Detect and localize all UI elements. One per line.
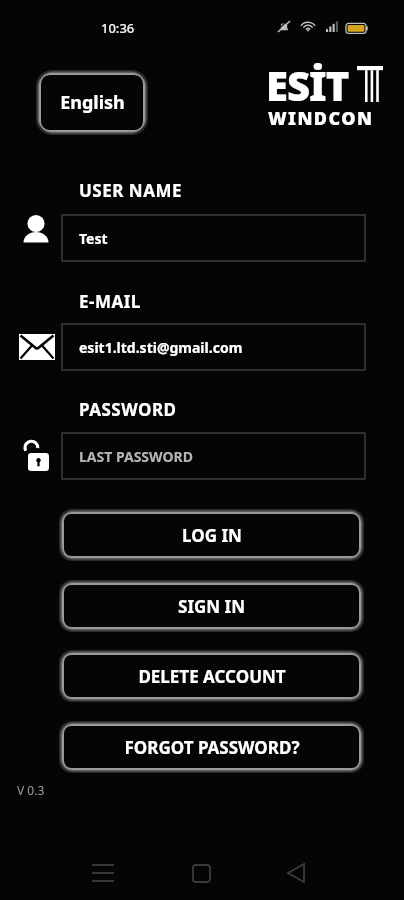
button[interactable]: Test bbox=[62, 215, 365, 261]
other: Email bbox=[19, 334, 55, 360]
button[interactable]: DELETE ACCOUNT bbox=[59, 650, 364, 702]
staticText: FORGOT PASSWORD? bbox=[124, 736, 300, 759]
staticText: Test bbox=[79, 229, 108, 248]
button[interactable]: Home bbox=[180, 852, 222, 894]
other: Password bbox=[22, 431, 56, 473]
staticText: PASSWORD bbox=[79, 398, 177, 421]
staticText: LAST PASSWORD bbox=[79, 447, 193, 466]
staticText: English bbox=[60, 90, 125, 115]
staticText: LOG IN bbox=[182, 524, 242, 547]
button[interactable]: LOG IN bbox=[59, 509, 364, 561]
staticText: DELETE ACCOUNT bbox=[138, 665, 286, 688]
button[interactable]: esit1.ltd.sti@gmail.com bbox=[62, 324, 365, 370]
staticText: USER NAME bbox=[79, 179, 182, 202]
button[interactable]: FORGOT PASSWORD? bbox=[59, 721, 364, 773]
button[interactable]: SIGN IN bbox=[59, 580, 364, 632]
other: User bbox=[17, 213, 55, 251]
staticText: E-MAIL bbox=[79, 290, 141, 313]
button[interactable]: LAST PASSWORD bbox=[62, 433, 365, 479]
button[interactable]: Back bbox=[275, 852, 317, 894]
staticText: WINDCON bbox=[268, 106, 374, 131]
button[interactable]: Recent apps bbox=[82, 852, 124, 894]
staticText: 10:36 bbox=[101, 19, 135, 37]
staticText: esit1.ltd.sti@gmail.com bbox=[79, 338, 243, 357]
staticText: V 0.3 bbox=[17, 782, 45, 798]
staticText: SIGN IN bbox=[178, 595, 245, 618]
button[interactable]: English bbox=[36, 70, 148, 135]
staticText: ESİT bbox=[266, 58, 349, 112]
